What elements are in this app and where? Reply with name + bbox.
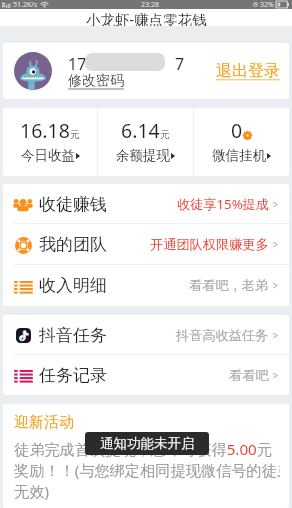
- button[interactable]: 收徒赚钱: [3, 184, 289, 224]
- staticText: 看看吧，老弟: [189, 277, 269, 294]
- staticText: 0: [231, 117, 243, 144]
- staticText: 通知功能未开启: [100, 435, 195, 452]
- staticText: 17: [68, 53, 87, 71]
- staticText: 看看吧: [229, 367, 269, 384]
- staticText: 今日收益: [21, 147, 75, 164]
- staticText: 7: [175, 53, 185, 71]
- staticText: 奖励！！(与您绑定相同提现微信号的徒弟: [14, 460, 280, 481]
- staticText: 16.18: [20, 117, 70, 144]
- staticText: 无效): [14, 481, 49, 502]
- staticText: 元: [160, 128, 170, 141]
- staticText: 收入明细: [39, 275, 107, 296]
- staticText: 微信挂机: [212, 147, 266, 164]
- button[interactable]: 修改密码: [68, 72, 124, 90]
- staticText: 我的团队: [39, 234, 107, 255]
- button[interactable]: 退出登录: [216, 61, 280, 81]
- staticText: 收徒赚钱: [39, 194, 107, 215]
- button[interactable]: 6.14: [98, 108, 193, 176]
- staticText: 开通团队权限赚更多: [150, 236, 269, 253]
- staticText: 余额提现: [116, 147, 170, 164]
- staticText: 任务记录: [39, 365, 107, 386]
- button[interactable]: 抖音任务: [3, 315, 289, 355]
- staticText: 元: [70, 128, 80, 141]
- button[interactable]: 收入明细: [3, 265, 289, 306]
- staticText: 收徒享15%提成: [177, 195, 269, 213]
- staticText: 徒弟完成首次提现，您即可获得5.00元: [14, 439, 272, 460]
- staticText: 小龙虾-赚点零花钱: [86, 9, 207, 26]
- staticText: 51.2K/s: [13, 0, 38, 9]
- button[interactable]: 0: [194, 108, 289, 176]
- staticText: 32%: [260, 0, 274, 9]
- staticText: 抖音任务: [39, 325, 107, 346]
- staticText: 抖音高收益任务: [176, 327, 269, 344]
- button[interactable]: 16.18: [3, 108, 97, 176]
- staticText: 迎新活动: [14, 413, 74, 432]
- button[interactable]: 我的团队: [3, 224, 289, 265]
- staticText: 23:28: [141, 0, 159, 9]
- button[interactable]: 任务记录: [3, 355, 289, 395]
- staticText: 6.14: [121, 117, 160, 144]
